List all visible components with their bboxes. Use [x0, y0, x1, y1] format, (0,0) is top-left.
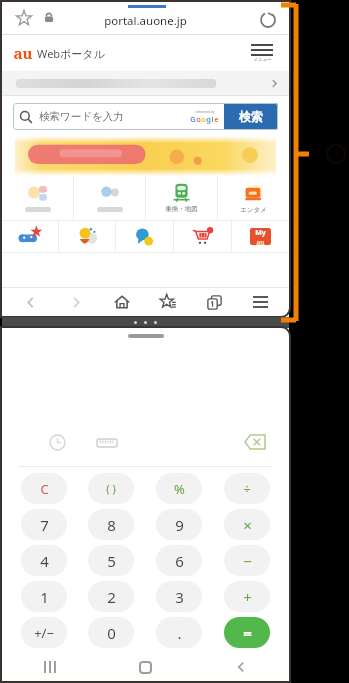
button[interactable]: エンタメ: [218, 176, 289, 220]
button[interactable]: My au: [232, 221, 289, 252]
button[interactable]: Back: [193, 653, 289, 681]
button[interactable]: .: [156, 617, 202, 648]
button[interactable]: +: [224, 581, 270, 612]
staticText: 7: [40, 515, 49, 535]
staticText: ×: [243, 515, 252, 535]
staticText: 検索: [239, 109, 263, 124]
staticText: +/−: [34, 624, 54, 642]
staticText: +: [243, 587, 252, 607]
staticText: g: [206, 114, 211, 124]
staticText: .: [177, 623, 182, 643]
staticText: =: [243, 623, 252, 643]
button[interactable]: Site security: [43, 11, 55, 23]
staticText: 検索ワードを入力: [39, 110, 124, 123]
button[interactable]: Menu: [237, 287, 283, 317]
staticText: 8: [107, 515, 116, 535]
staticText: l: [211, 114, 214, 124]
button[interactable]: −: [224, 545, 270, 576]
button[interactable]: ( ): [88, 473, 134, 504]
button[interactable]: Delete: [243, 433, 267, 451]
button[interactable]: =: [224, 617, 270, 648]
button[interactable]: 4: [21, 545, 67, 576]
button[interactable]: 6: [156, 545, 202, 576]
button[interactable]: 8: [88, 509, 134, 540]
staticText: %: [174, 480, 185, 498]
button[interactable]: 7: [21, 509, 67, 540]
button[interactable]: 9: [156, 509, 202, 540]
button[interactable]: C: [21, 473, 67, 504]
button[interactable]: 5: [88, 545, 134, 576]
button[interactable]: Campaign banner: [15, 136, 276, 176]
button[interactable]: Shopping: [174, 221, 231, 252]
staticText: ÷: [243, 480, 251, 498]
button[interactable]: Menu: [249, 42, 275, 65]
button[interactable]: Bookmarks: [145, 287, 191, 317]
staticText: Webポータル: [37, 46, 105, 61]
button[interactable]: Home: [97, 653, 193, 681]
button[interactable]: %: [156, 473, 202, 504]
staticText: au: [256, 238, 265, 245]
staticText: au: [13, 43, 33, 63]
staticText: portal.auone.jp: [104, 13, 187, 29]
button[interactable]: Shortcut: [74, 176, 145, 220]
button[interactable]: Games: [2, 221, 58, 252]
button[interactable]: +/−: [21, 617, 67, 648]
button[interactable]: Ponta: [59, 221, 115, 252]
staticText: o: [196, 114, 201, 124]
button[interactable]: Bookmark: [15, 9, 33, 27]
staticText: e: [214, 114, 219, 124]
button[interactable]: 1: [21, 581, 67, 612]
staticText: 乗換・地図: [165, 205, 198, 213]
staticText: 0: [107, 623, 116, 643]
staticText: enhanced by: [195, 110, 215, 114]
button[interactable]: 乗換・地図: [146, 176, 217, 220]
button[interactable]: ×: [224, 509, 270, 540]
staticText: My: [255, 228, 266, 238]
button[interactable]: Forward: [53, 287, 99, 317]
staticText: −: [243, 551, 252, 571]
button[interactable]: Recents: [2, 653, 97, 681]
button[interactable]: 検索ワードを入力: [13, 103, 278, 130]
staticText: 2: [107, 587, 116, 607]
button[interactable]: QUICPay: [116, 221, 173, 252]
button[interactable]: Home: [99, 287, 145, 317]
staticText: エンタメ: [240, 206, 267, 214]
staticText: ( ): [106, 481, 116, 496]
staticText: 6: [175, 551, 184, 571]
button[interactable]: 検索: [224, 103, 278, 130]
staticText: メニュー: [253, 57, 272, 63]
button[interactable]: History: [46, 431, 68, 453]
staticText: 5: [107, 551, 116, 571]
button[interactable]: Back: [8, 287, 53, 317]
button[interactable]: 3: [156, 581, 202, 612]
staticText: 1: [334, 148, 340, 160]
button[interactable]: Tabs: [191, 287, 237, 317]
button[interactable]: 0: [88, 617, 134, 648]
button[interactable]: ÷: [224, 473, 270, 504]
button[interactable]: Unit converter: [94, 431, 120, 453]
staticText: C: [40, 480, 49, 498]
button[interactable]: 2: [88, 581, 134, 612]
staticText: 3: [175, 587, 184, 607]
staticText: 9: [175, 515, 184, 535]
button[interactable]: Reload: [259, 11, 277, 29]
button[interactable]: Shortcut: [2, 176, 73, 220]
staticText: 4: [40, 551, 49, 571]
staticText: G: [190, 114, 196, 124]
staticText: o: [201, 114, 206, 124]
staticText: 1: [40, 587, 49, 607]
